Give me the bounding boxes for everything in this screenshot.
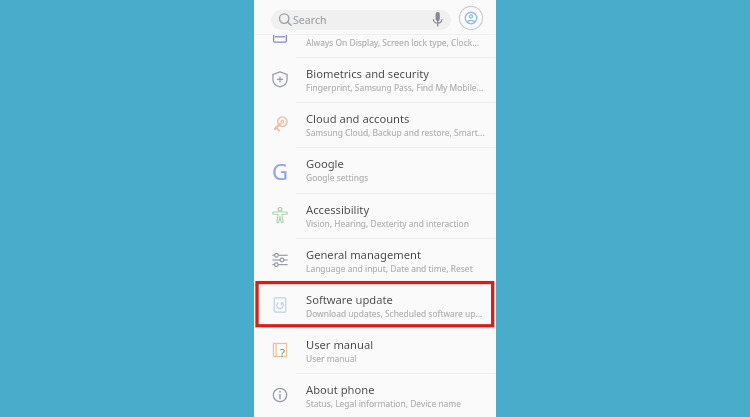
staticText: Vision, Hearing, Dexterity and interacti… [306,218,469,230]
button[interactable] [271,10,451,30]
button[interactable]: G [254,148,496,192]
other: Voice search [431,10,445,24]
button[interactable]: Account [458,5,484,31]
staticText: User manual [306,353,357,365]
staticText: Fingerprint, Samsung Pass, Find My Mobil… [306,82,484,94]
button[interactable]: Cloud and accounts [254,103,496,147]
staticText: Samsung Cloud, Backup and restore, Smart… [306,127,485,139]
staticText: Google settings [306,172,369,184]
staticText: Accessibility [306,202,370,217]
staticText: Google [306,156,344,171]
button[interactable]: Biometrics and security [254,58,496,102]
button[interactable]: Software update [254,284,496,328]
staticText: Language and input, Date and time, Reset [306,263,473,275]
staticText: Search [293,13,327,27]
staticText: User manual [306,337,374,352]
button[interactable]: General management [254,239,496,283]
staticText: Cloud and accounts [306,111,410,126]
staticText: About phone [306,382,375,397]
staticText: Software update [306,292,393,307]
button[interactable]: ? [254,329,496,373]
button[interactable]: Accessibility [254,194,496,238]
button[interactable]: Always On Display, Screen lock type, Clo… [254,34,496,57]
staticText: Status, Legal information, Device name [306,398,461,410]
staticText: G [272,156,289,186]
staticText: Biometrics and security [306,66,430,81]
staticText: Download updates, Scheduled software up.… [306,308,483,320]
button[interactable]: About phone [254,374,496,417]
staticText: ? [280,345,285,361]
staticText: Always On Display, Screen lock type, Clo… [306,37,480,49]
staticText: General management [306,247,421,262]
